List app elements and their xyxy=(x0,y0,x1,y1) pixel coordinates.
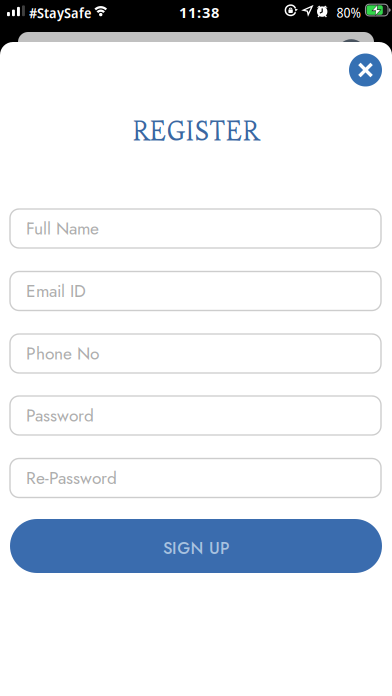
staticText: Password xyxy=(26,403,94,428)
button[interactable]: Re-Password xyxy=(10,458,381,497)
staticText: Full Name xyxy=(26,216,99,241)
staticText: Email ID xyxy=(26,279,86,303)
button[interactable]: Password xyxy=(10,396,381,435)
button[interactable]: Close xyxy=(349,53,382,86)
staticText: REGISTER xyxy=(132,113,259,148)
staticText: #StaySafe xyxy=(29,2,91,22)
button[interactable]: SIGN UP xyxy=(10,519,382,573)
button[interactable]: Phone No xyxy=(10,334,381,373)
staticText: Phone No xyxy=(26,341,99,366)
button[interactable]: Email ID xyxy=(10,271,381,310)
button[interactable]: Full Name xyxy=(10,209,381,248)
staticText: Re-Password xyxy=(26,466,117,490)
staticText: 1 1 : 3 8 xyxy=(179,2,219,22)
staticText: SIGN UP xyxy=(163,536,229,560)
staticText: 80% xyxy=(336,3,361,22)
